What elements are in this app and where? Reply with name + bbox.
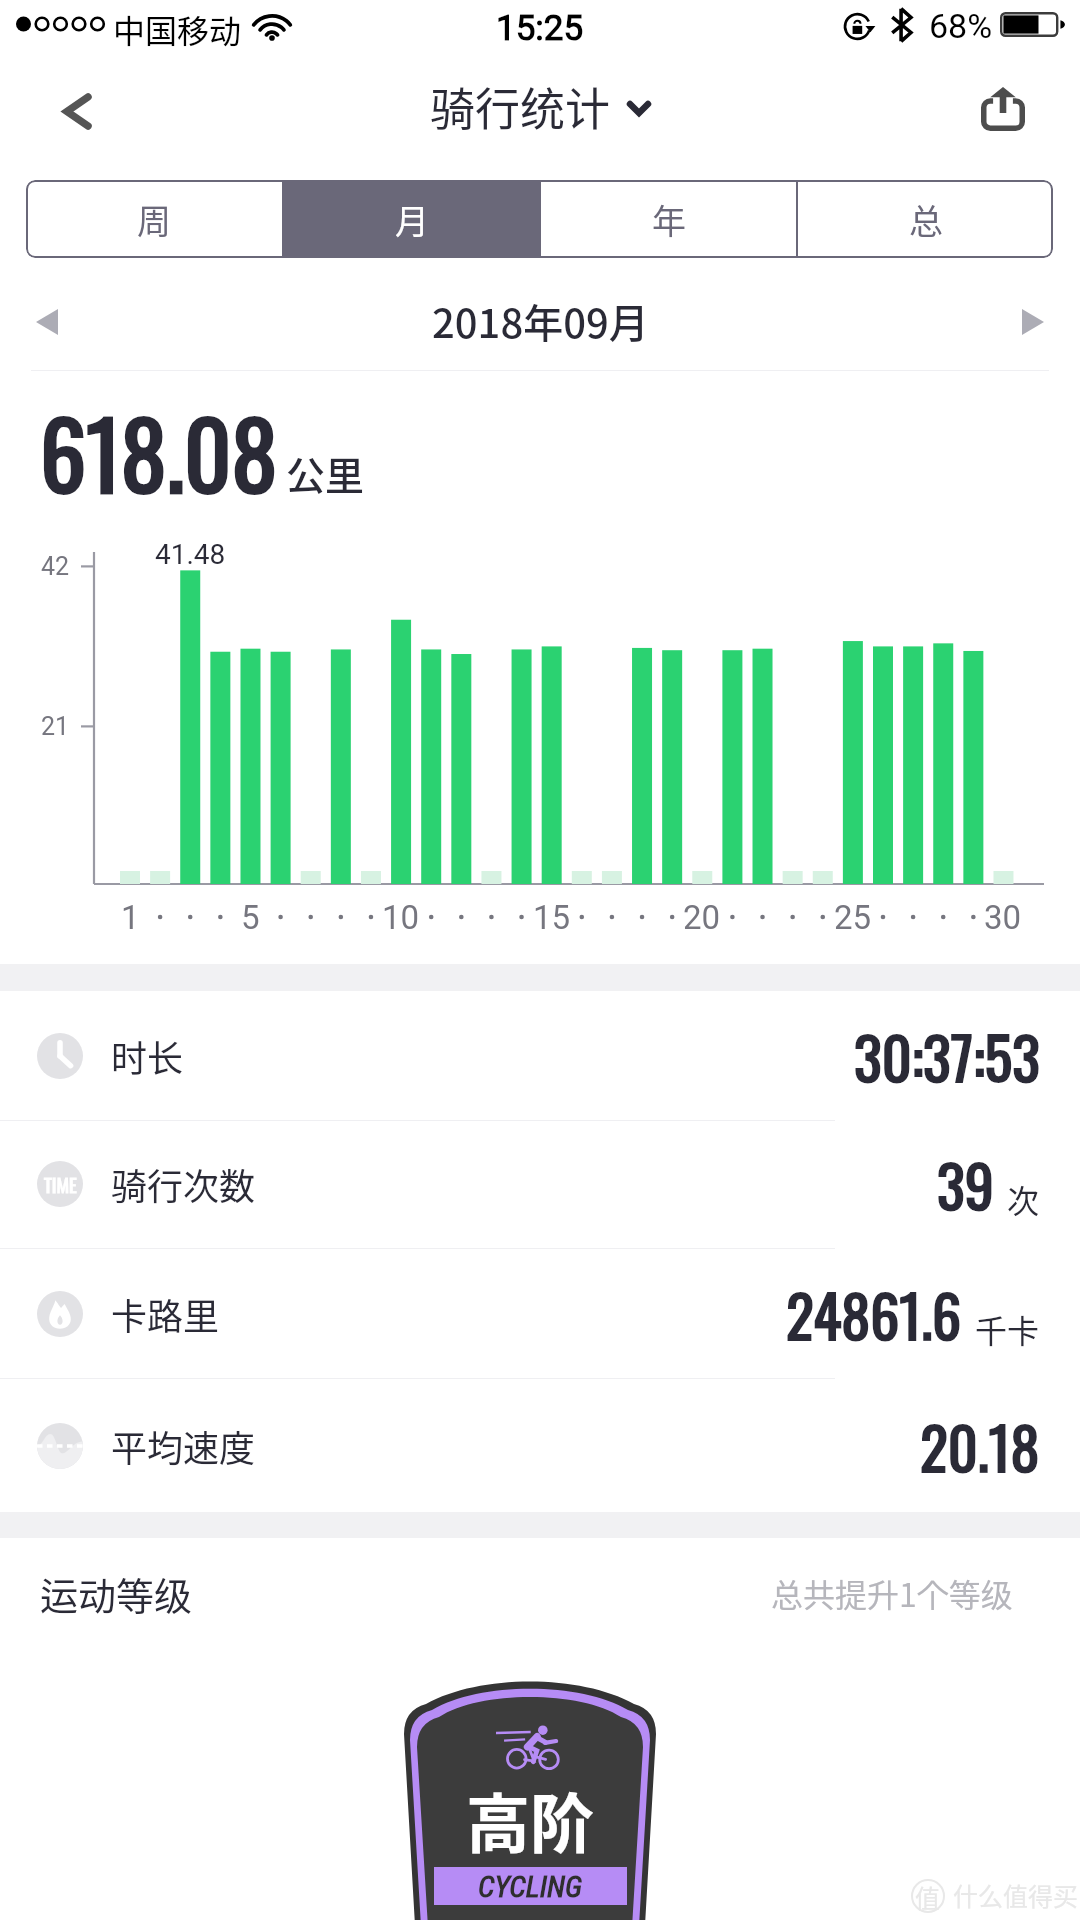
staticText: 30 [984, 898, 1022, 937]
button[interactable]: 骑行统计 [430, 74, 651, 139]
staticText: 20.18 [920, 1403, 1040, 1489]
button[interactable]: 总 [798, 180, 1053, 258]
staticText: 中国移动 [113, 6, 242, 52]
staticText: 68% [929, 6, 993, 46]
staticText: 15:25 [496, 8, 584, 49]
staticText: 时长 [111, 1030, 184, 1082]
button[interactable]: 平均速度 [0, 1381, 1080, 1511]
button[interactable]: 时长 [0, 991, 1080, 1121]
button[interactable]: 月 [284, 180, 539, 258]
staticText: 公里 [286, 445, 365, 501]
staticText: 月 [395, 195, 429, 244]
button[interactable]: Next month [984, 276, 1080, 368]
staticText: 618.08 [40, 383, 278, 519]
staticText: 总 [909, 195, 943, 244]
staticText: 卡路里 [111, 1288, 220, 1340]
button[interactable]: 年 [541, 180, 796, 258]
staticText: 42 [41, 552, 70, 581]
staticText: 什么值得买 [953, 1877, 1079, 1913]
button[interactable]: 卡路里 [0, 1249, 1080, 1379]
staticText: 10 [382, 898, 420, 937]
staticText: 25 [834, 898, 872, 937]
staticText: 总共提升1个等级 [771, 1570, 1013, 1616]
staticText: 骑行统计 [430, 74, 611, 139]
staticText: 平均速度 [111, 1420, 256, 1472]
staticText: CYCLING [478, 1869, 583, 1904]
staticText: 20 [683, 898, 721, 937]
staticText: 千卡 [975, 1306, 1040, 1352]
staticText: 值 [915, 1879, 941, 1913]
staticText: 次 [1007, 1176, 1040, 1222]
button[interactable]: Back [0, 58, 130, 170]
staticText: 30:37:53 [854, 1013, 1040, 1099]
button[interactable]: TIME [0, 1119, 1080, 1249]
button[interactable]: 周 [26, 180, 282, 258]
staticText: 骑行次数 [111, 1158, 256, 1210]
staticText: 21 [41, 712, 70, 741]
staticText: 周 [137, 195, 171, 244]
staticText: 41.48 [155, 538, 226, 571]
staticText: 年 [652, 195, 686, 244]
staticText: 24861.6 [786, 1271, 962, 1357]
staticText: 5 [241, 898, 260, 937]
button[interactable]: Share [950, 58, 1080, 170]
staticText: 15 [533, 898, 571, 937]
staticText: 高阶 [466, 1773, 594, 1866]
staticText: TIME [44, 1170, 77, 1198]
staticText: 1 [121, 898, 140, 937]
staticText: 运动等级 [40, 1566, 193, 1621]
button[interactable]: Previous month [0, 276, 96, 368]
staticText: 39 [937, 1141, 994, 1227]
staticText: 2018年09月 [432, 292, 649, 350]
